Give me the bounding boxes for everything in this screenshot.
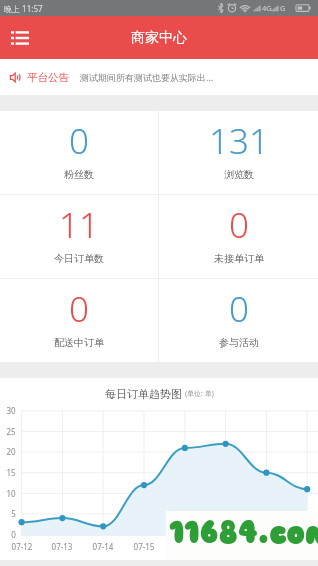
staticText: 参与活动 <box>219 336 259 349</box>
staticText: 4G <box>262 3 272 13</box>
button[interactable]: 11 <box>0 195 158 278</box>
staticText: 0 <box>229 201 249 249</box>
staticText: G <box>280 3 286 13</box>
staticText: 未接单订单 <box>214 252 264 265</box>
staticText: 131 <box>209 117 269 165</box>
staticText: 25 <box>6 426 16 437</box>
button[interactable]: 0 <box>0 111 158 194</box>
staticText: 平台公告 <box>27 71 69 84</box>
staticText: 浏览数 <box>224 168 254 181</box>
button[interactable]: 0 <box>159 279 318 362</box>
staticText: 07-13 <box>46 541 78 552</box>
staticText: 15 <box>6 467 16 478</box>
staticText: 0 <box>229 285 249 333</box>
staticText: 0 <box>69 285 89 333</box>
staticText: 10 <box>6 488 16 499</box>
staticText: 0 <box>11 529 16 540</box>
staticText: 07-14 <box>87 541 119 552</box>
staticText: 20 <box>6 446 16 457</box>
staticText: 5 <box>11 508 16 519</box>
button[interactable]: 0 <box>0 279 158 362</box>
staticText: 30 <box>6 405 16 416</box>
staticText: 粉丝数 <box>64 168 94 181</box>
button[interactable]: 131 <box>159 111 318 194</box>
staticText: 测试期间所有测试也要从实际出... <box>80 71 214 83</box>
staticText: 0 <box>69 117 89 165</box>
staticText: 晚上 11:57 <box>4 3 43 14</box>
staticText: 11 <box>59 201 99 249</box>
staticText: (单位: 单) <box>185 389 214 399</box>
button[interactable]: Open navigation menu <box>6 24 34 52</box>
staticText: 配送中订单 <box>54 336 104 349</box>
staticText: 07-15 <box>128 541 160 552</box>
button[interactable]: 平台公告 <box>0 59 318 95</box>
staticText: 今日订单数 <box>54 252 104 265</box>
staticText: 商家中心 <box>131 29 187 47</box>
button[interactable]: 0 <box>159 195 318 278</box>
staticText: 07-12 <box>6 541 38 552</box>
staticText: 每日订单趋势图 <box>105 387 182 401</box>
